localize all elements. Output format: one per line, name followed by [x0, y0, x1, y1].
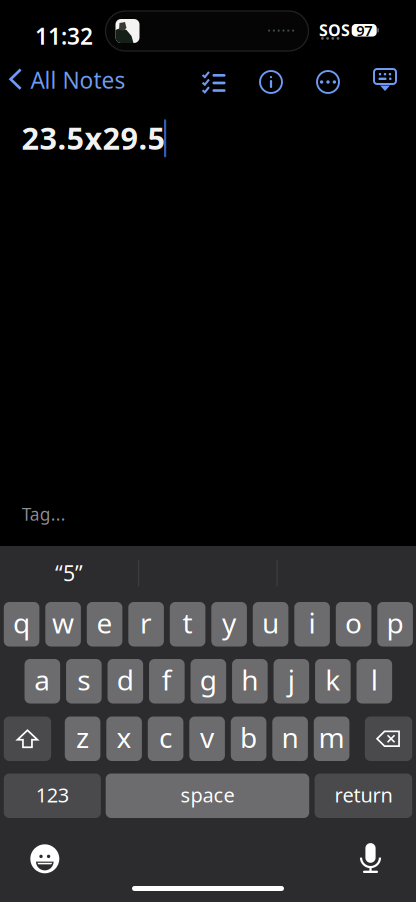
button[interactable]: s: [66, 659, 102, 703]
button[interactable]: y: [211, 602, 247, 646]
button[interactable]: g: [191, 659, 226, 703]
staticText: n: [282, 719, 299, 756]
button[interactable]: c: [148, 716, 183, 761]
staticText: k: [325, 661, 340, 698]
button[interactable]: r: [128, 602, 164, 646]
staticText: o: [345, 604, 362, 641]
button[interactable]: x: [106, 716, 142, 761]
staticText: r: [140, 604, 152, 641]
button[interactable]: Shift: [4, 716, 51, 761]
button[interactable]: Info: [259, 70, 283, 94]
staticText: space: [180, 781, 234, 808]
staticText: s: [77, 661, 90, 698]
staticText: d: [117, 661, 134, 698]
button[interactable]: b: [231, 716, 266, 761]
button[interactable]: t: [170, 602, 205, 646]
staticText: v: [200, 719, 214, 756]
staticText: h: [241, 661, 258, 698]
staticText: p: [387, 604, 404, 641]
button[interactable]: n: [272, 716, 308, 761]
staticText: j: [288, 661, 295, 698]
staticText: m: [319, 719, 345, 756]
staticText: 11:32: [35, 21, 93, 51]
staticText: 123: [36, 781, 69, 808]
button[interactable]: p: [377, 602, 413, 646]
staticText: x: [117, 719, 132, 756]
button[interactable]: Checklist: [202, 71, 226, 93]
staticText: 23.5x29.5: [21, 117, 165, 158]
button[interactable]: space: [106, 773, 309, 818]
staticText: t: [183, 604, 193, 641]
button[interactable]: q: [4, 602, 39, 646]
staticText: l: [371, 661, 378, 698]
staticText: “5”: [55, 559, 83, 587]
staticText: q: [13, 604, 30, 641]
button[interactable]: v: [189, 716, 225, 761]
staticText: g: [200, 661, 217, 698]
button[interactable]: w: [45, 602, 81, 646]
button[interactable]: Dictate: [360, 843, 381, 873]
button[interactable]: Delete: [365, 716, 412, 761]
button[interactable]: e: [87, 602, 122, 646]
staticText: Tag...: [22, 502, 66, 525]
button[interactable]: More: [316, 70, 340, 94]
button[interactable]: Emoji: [30, 844, 59, 874]
staticText: return: [334, 781, 392, 808]
button[interactable]: 123: [4, 773, 101, 818]
button[interactable]: u: [253, 602, 288, 646]
staticText: u: [262, 604, 279, 641]
button[interactable]: j: [274, 659, 309, 703]
button[interactable]: o: [336, 602, 371, 646]
button[interactable]: All Notes: [0, 57, 125, 101]
staticText: z: [76, 719, 89, 756]
staticText: a: [34, 661, 50, 698]
staticText: e: [97, 604, 113, 641]
button[interactable]: f: [149, 659, 185, 703]
button[interactable]: k: [315, 659, 351, 703]
button[interactable]: l: [357, 659, 392, 703]
button[interactable]: return: [315, 773, 412, 818]
staticText: c: [159, 719, 172, 756]
staticText: All Notes: [30, 65, 125, 95]
button[interactable]: Hide Keyboard: [372, 69, 398, 93]
button[interactable]: h: [232, 659, 268, 703]
button[interactable]: i: [294, 602, 330, 646]
button[interactable]: m: [314, 716, 349, 761]
button[interactable]: z: [65, 716, 100, 761]
button[interactable]: d: [107, 659, 143, 703]
button[interactable]: a: [25, 659, 60, 703]
staticText: 97: [356, 20, 372, 40]
staticText: y: [222, 604, 236, 641]
staticText: f: [162, 661, 172, 698]
staticText: i: [309, 604, 316, 641]
staticText: b: [240, 719, 257, 756]
staticText: w: [52, 604, 74, 641]
staticText: SOS: [319, 19, 350, 41]
